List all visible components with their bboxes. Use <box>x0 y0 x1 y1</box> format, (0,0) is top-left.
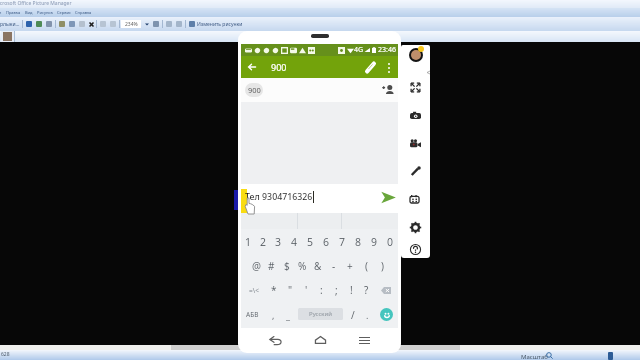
staticText: + <box>347 259 353 273</box>
staticText: Microsoft Office Picture Manager <box>0 0 72 7</box>
button[interactable]: Draw <box>401 157 430 185</box>
button[interactable]: * <box>266 278 282 302</box>
staticText: =\< <box>249 286 259 295</box>
button[interactable]: Toolbar button <box>188 20 196 28</box>
staticText: 2 <box>260 235 267 249</box>
button[interactable] <box>241 213 294 229</box>
button[interactable]: _ <box>280 302 295 327</box>
button[interactable]: Backspace <box>374 278 398 302</box>
button[interactable]: Toolbar button <box>109 20 117 28</box>
button[interactable]: ( <box>358 254 374 278</box>
button[interactable]: 4 <box>286 229 302 254</box>
staticText: Справка <box>75 10 92 15</box>
button[interactable]: Take screenshot <box>401 101 430 129</box>
button[interactable]: 5 <box>302 229 318 254</box>
button[interactable]: 1 <box>241 229 256 254</box>
staticText: ! <box>350 283 353 297</box>
button[interactable]: 234% <box>121 20 141 28</box>
button[interactable]: Home <box>309 329 331 351</box>
staticText: Сервис <box>57 10 71 15</box>
staticText: / <box>351 308 355 322</box>
button[interactable]: Вид <box>25 10 33 15</box>
button[interactable]: @ <box>249 254 264 278</box>
staticText: Вид <box>25 10 33 15</box>
button[interactable]: Справка <box>75 10 92 15</box>
staticText: Файл <box>0 10 2 15</box>
staticText: 5 <box>307 235 314 249</box>
button[interactable]: Русский <box>298 308 343 320</box>
button[interactable]: 900 <box>245 83 263 97</box>
button[interactable]: Изменить рисунки <box>197 21 243 28</box>
button[interactable]: Файл <box>0 10 2 15</box>
button[interactable]: % <box>294 254 310 278</box>
button[interactable]: АБВ <box>244 302 261 327</box>
staticText: Рисунок <box>37 10 53 15</box>
button[interactable]: : <box>314 278 329 302</box>
button[interactable]: Settings <box>401 213 430 241</box>
button[interactable]: Toolbar button <box>68 20 76 28</box>
staticText: & <box>314 259 322 273</box>
button[interactable]: Toolbar button <box>45 20 53 28</box>
button[interactable]: Toolbar button <box>165 20 173 28</box>
button[interactable]: Back <box>241 56 263 78</box>
button[interactable]: 0 <box>382 229 398 254</box>
button[interactable]: Attach file <box>359 56 381 78</box>
button[interactable]: Рисунок <box>37 10 53 15</box>
button[interactable]: Правка <box>6 10 21 15</box>
button[interactable]: ! <box>344 278 359 302</box>
button[interactable]: 6 <box>318 229 334 254</box>
button[interactable]: Delete <box>87 20 95 28</box>
staticText: 628 <box>1 351 10 358</box>
staticText: 8 <box>355 235 362 249</box>
staticText: , <box>272 309 275 321</box>
button[interactable]: Calendar <box>401 185 430 213</box>
button[interactable]: More options <box>381 60 396 75</box>
button[interactable]: / <box>345 302 360 327</box>
staticText: @ <box>252 259 261 273</box>
button[interactable]: Fullscreen <box>401 73 430 101</box>
button[interactable]: Toolbar button <box>175 20 183 28</box>
button[interactable]: ) <box>374 254 390 278</box>
staticText: 6 <box>323 235 330 249</box>
button[interactable]: , <box>265 302 281 327</box>
staticText: $ <box>284 259 290 273</box>
button[interactable]: # <box>264 254 279 278</box>
button[interactable]: Toolbar button <box>78 20 86 28</box>
button[interactable]: Record video <box>401 129 430 157</box>
button[interactable]: Back <box>264 329 286 351</box>
button[interactable] <box>294 213 346 229</box>
staticText: 0 <box>387 235 394 249</box>
button[interactable]: Toolbar button <box>25 20 33 28</box>
button[interactable]: Toolbar button <box>152 20 160 28</box>
staticText: : <box>320 283 323 297</box>
staticText: Масштаб <box>521 353 548 360</box>
button[interactable]: " <box>282 278 298 302</box>
staticText: 900 <box>271 61 287 73</box>
button[interactable]: + <box>342 254 358 278</box>
button[interactable]: 8 <box>350 229 366 254</box>
button[interactable]: Toolbar button <box>35 20 43 28</box>
button[interactable]: Send <box>380 189 396 205</box>
button[interactable]: Recent apps <box>353 329 375 351</box>
button[interactable]: Emoji <box>380 308 393 321</box>
button[interactable]: Сервис <box>57 10 71 15</box>
button[interactable]: $ <box>279 254 294 278</box>
button[interactable]: Help <box>401 241 430 258</box>
button[interactable]: Add contact <box>380 82 396 98</box>
button[interactable]: Toolbar button <box>99 20 107 28</box>
button[interactable]: =\< <box>241 278 266 302</box>
button[interactable]: 9 <box>366 229 382 254</box>
button[interactable]: 3 <box>271 229 286 254</box>
button[interactable]: . <box>360 302 374 327</box>
button[interactable]: - <box>326 254 342 278</box>
staticText: АБВ <box>246 310 259 319</box>
staticText: # <box>268 259 275 273</box>
button[interactable]: ; <box>329 278 344 302</box>
button[interactable]: & <box>310 254 326 278</box>
button[interactable]: Toolbar button <box>58 20 66 28</box>
button[interactable]: 2 <box>256 229 271 254</box>
button[interactable]: ' <box>298 278 314 302</box>
button[interactable]: ? <box>359 278 374 302</box>
button[interactable]: 7 <box>334 229 350 254</box>
